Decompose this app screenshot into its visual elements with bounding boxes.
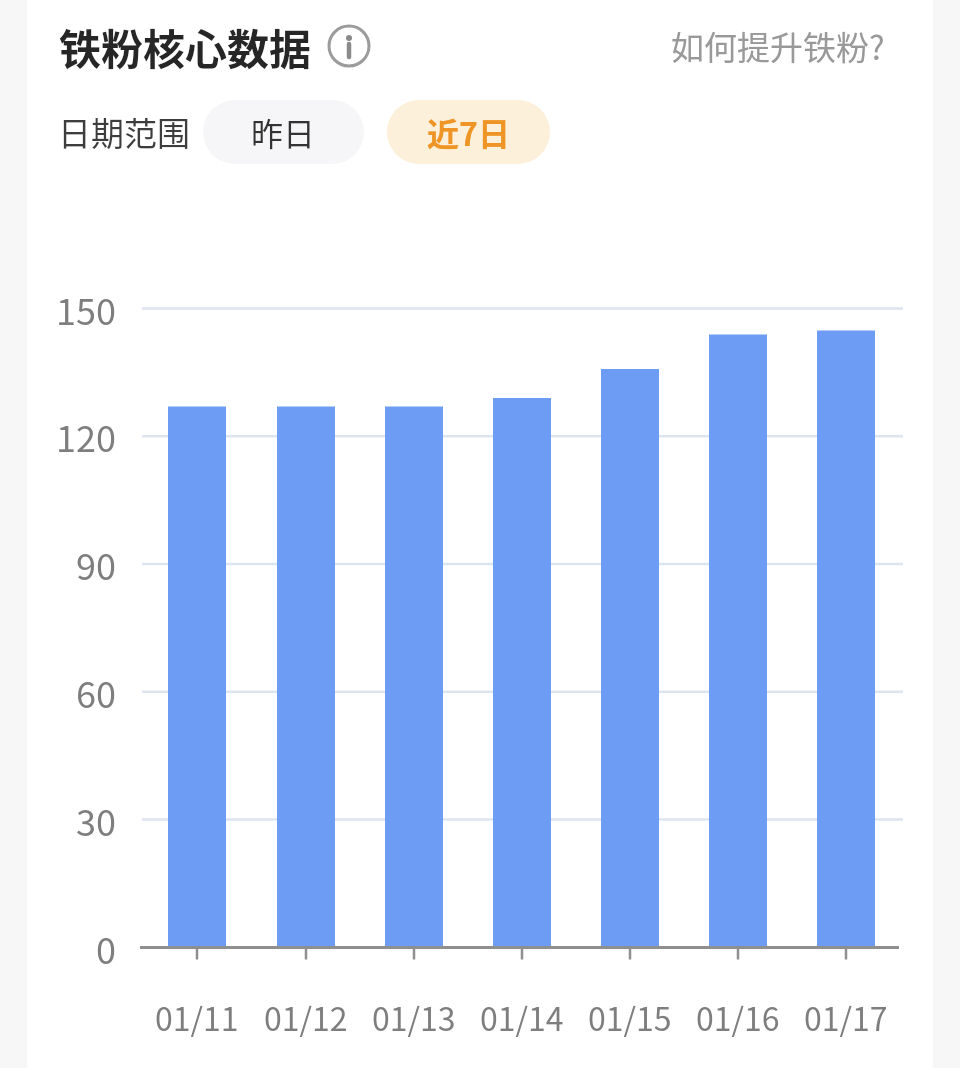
staticText: 如何提升铁粉? [671, 22, 885, 70]
staticText: 01/12 [264, 994, 348, 1040]
staticText: 0 [96, 922, 116, 974]
staticText: 01/14 [480, 994, 564, 1040]
staticText: 01/17 [804, 994, 888, 1040]
button[interactable] [327, 24, 371, 68]
button[interactable]: 如何提升铁粉? [645, 16, 885, 76]
staticText: 60 [76, 666, 116, 718]
staticText: 近7日 [427, 109, 510, 155]
staticText: 30 [76, 794, 116, 846]
button[interactable]: 近7日 [387, 100, 550, 164]
staticText: 01/13 [372, 994, 456, 1040]
staticText: 90 [76, 538, 116, 590]
staticText: 150 [56, 283, 116, 335]
staticText: 120 [56, 410, 116, 462]
staticText: 日期范围 [58, 108, 190, 156]
staticText: 昨日 [251, 109, 316, 155]
staticText: 01/15 [588, 994, 672, 1040]
staticText: 铁粉核心数据 [59, 16, 312, 76]
button[interactable]: 昨日 [203, 100, 364, 164]
staticText: 01/16 [696, 994, 780, 1040]
staticText: 01/11 [155, 994, 239, 1040]
